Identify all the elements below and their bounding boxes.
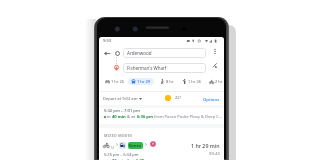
- button[interactable]: 1 hr 29: [128, 78, 154, 85]
- staticText: 33 min: [112, 158, 126, 160]
- staticText: 1 hr 29 min: [191, 142, 220, 149]
- staticText: 8 hr: [166, 79, 174, 84]
- staticText: 40 min: [112, 114, 126, 120]
- staticText: Options: [203, 96, 220, 102]
- staticText: 6:29 pm: [136, 158, 152, 160]
- staticText: 22°: [175, 95, 182, 101]
- staticText: 6:36 pm: [137, 114, 153, 120]
- staticText: 9:53: [103, 38, 112, 44]
- button[interactable]: 2 hr: [209, 78, 223, 85]
- staticText: 5:32 pm – 7:01 pm: [104, 108, 140, 114]
- button[interactable]: 8 hr: [160, 78, 174, 85]
- staticText: from Paseo Padre Pkwy & Deep C…: [153, 114, 223, 120]
- button[interactable]: Swap start and destination: [211, 62, 218, 69]
- button[interactable]: Fisherman's Wharf: [123, 63, 206, 73]
- staticText: Green: [129, 143, 142, 149]
- staticText: 1 hr 29: [137, 79, 151, 84]
- staticText: MIXED MODES: [104, 133, 133, 138]
- staticText: & at: [126, 158, 136, 160]
- button[interactable]: 1 hr 26: [182, 78, 202, 85]
- staticText: 1 hr 26: [188, 79, 202, 84]
- button[interactable]: Ardenwood: [123, 48, 206, 58]
- staticText: in: [107, 114, 112, 120]
- staticText: 14: [111, 146, 114, 150]
- staticText: in: [107, 158, 112, 160]
- button[interactable]: [99, 140, 224, 160]
- button[interactable]: More options: [211, 48, 218, 55]
- staticText: Depart at 9:02 am: [103, 96, 138, 102]
- staticText: Ardenwood: [127, 50, 152, 56]
- button[interactable]: [99, 107, 224, 123]
- staticText: Fisherman's Wharf: [127, 65, 167, 71]
- staticText: $9.45: [209, 150, 220, 156]
- staticText: 2 hr: [215, 79, 223, 84]
- button[interactable]: Back: [103, 50, 110, 57]
- staticText: & at: [126, 114, 137, 120]
- staticText: 1 hr 26: [111, 79, 125, 84]
- staticText: 5:25 pm – 6:34 pm: [104, 152, 139, 157]
- button[interactable]: Depart at 9:02 am: [103, 95, 142, 103]
- button[interactable]: Options: [201, 95, 222, 103]
- button[interactable]: 1 hr 26: [105, 78, 125, 85]
